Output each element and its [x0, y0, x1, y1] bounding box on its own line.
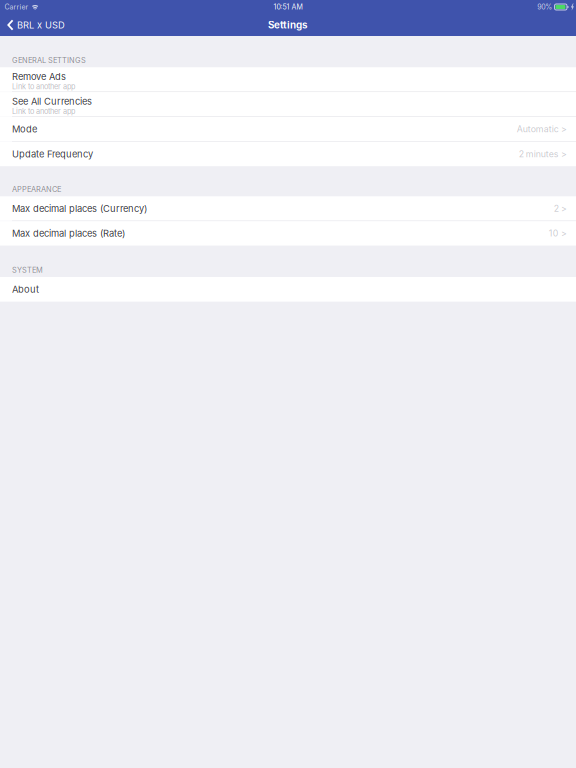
staticText: 90%: [537, 3, 552, 11]
staticText: Max decimal places (Currency): [12, 203, 147, 214]
staticText: GENERAL SETTINGS: [12, 56, 86, 65]
staticText: 2: [554, 203, 559, 214]
staticText: Settings: [268, 19, 308, 31]
staticText: APPEARANCE: [12, 185, 61, 194]
staticText: >: [561, 228, 567, 239]
button[interactable]: See All Currencies: [0, 92, 576, 116]
staticText: Remove Ads: [12, 71, 66, 82]
staticText: BRL x USD: [17, 19, 65, 31]
button[interactable]: About: [0, 277, 576, 302]
staticText: 10: [549, 228, 559, 239]
staticText: >: [561, 203, 567, 214]
staticText: Carrier: [4, 3, 28, 11]
staticText: Link to another app: [12, 82, 75, 91]
staticText: SYSTEM: [12, 265, 43, 274]
button[interactable]: Mode: [0, 117, 576, 141]
staticText: Automatic: [517, 124, 559, 134]
staticText: Max decimal places (Rate): [12, 228, 125, 239]
button[interactable]: Remove Ads: [0, 67, 576, 92]
staticText: Link to another app: [12, 107, 75, 116]
button[interactable]: Max decimal places (Rate): [0, 221, 576, 246]
staticText: >: [561, 149, 567, 159]
button[interactable]: Update Frequency: [0, 142, 576, 166]
staticText: Update Frequency: [12, 148, 93, 160]
staticText: 2 minutes: [519, 149, 559, 159]
button[interactable]: BRL x USD: [0, 14, 71, 36]
staticText: >: [561, 124, 567, 134]
staticText: Mode: [12, 123, 37, 135]
button[interactable]: Max decimal places (Currency): [0, 196, 576, 221]
staticText: About: [12, 284, 39, 295]
staticText: See All Currencies: [12, 96, 92, 107]
staticText: 10:51 AM: [273, 3, 302, 11]
